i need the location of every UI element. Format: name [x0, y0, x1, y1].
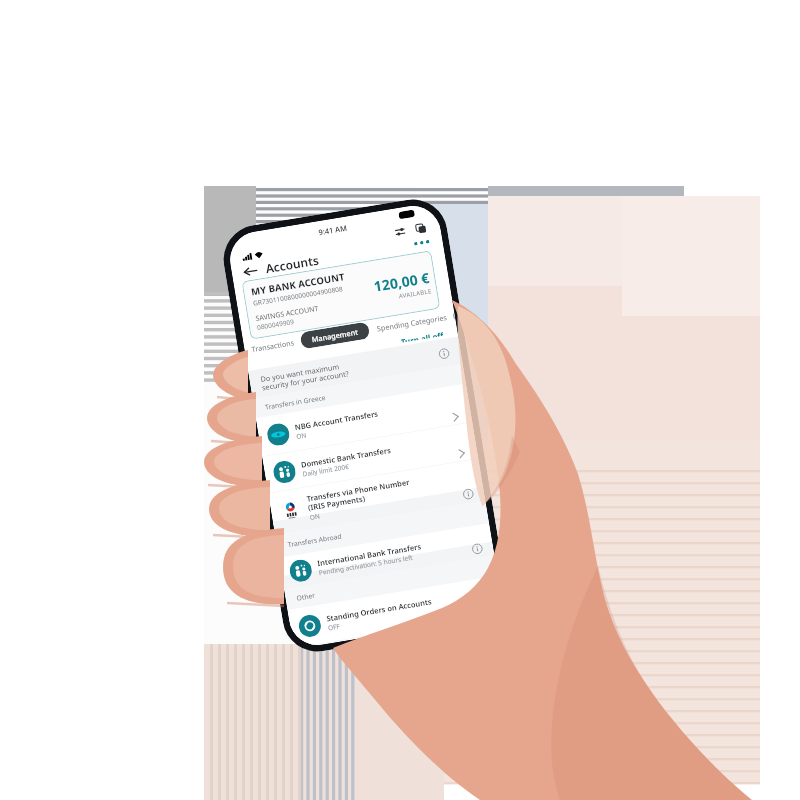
- staticText: ON: [296, 430, 307, 441]
- staticText: Spending Categories: [376, 312, 448, 333]
- staticText: 9:41 AM: [318, 223, 348, 237]
- staticText: NBG Account Transfers: [294, 408, 379, 432]
- button[interactable]: NBG Account Transfers: [256, 384, 472, 456]
- staticText: Other: [296, 563, 486, 603]
- staticText: Transactions: [251, 337, 295, 354]
- staticText: SAVINGS ACCOUNT: [255, 303, 319, 323]
- staticText: MY BANK ACCOUNT: [250, 270, 346, 298]
- staticText: Transfers in Greece: [264, 372, 454, 412]
- staticText: 0800049909: [256, 317, 295, 332]
- staticText: Domestic Bank Transfers: [300, 445, 392, 470]
- button[interactable]: MY BANK ACCOUNT: [241, 250, 440, 340]
- staticText: Transfers via Phone Number (IRIS Payment…: [306, 477, 412, 513]
- staticText: OFF: [327, 622, 340, 632]
- staticText: ON: [309, 511, 321, 522]
- button[interactable]: Do you want maximum security for your ac…: [248, 336, 463, 399]
- other: Information: [461, 487, 475, 501]
- button[interactable]: Transactions: [251, 337, 295, 354]
- other: Information: [470, 542, 484, 556]
- staticText: Ba: [452, 311, 456, 321]
- staticText: 120,00 €: [372, 268, 431, 296]
- button[interactable]: Transfers via Phone Number (IRIS Payment…: [268, 459, 485, 534]
- staticText: Daily limit 200€: [302, 462, 350, 478]
- staticText: Turn all off: [400, 330, 444, 343]
- button[interactable]: More options: [410, 233, 433, 253]
- button[interactable]: Ba: [452, 311, 456, 321]
- staticText: Standing Orders on Accounts: [326, 596, 432, 623]
- button[interactable]: My cards: [413, 221, 428, 235]
- staticText: Pending activation: 5 hours left: [318, 553, 413, 577]
- staticText: Do you want maximum security for your ac…: [260, 345, 439, 392]
- button[interactable]: Domestic Bank Transfers: [262, 422, 478, 493]
- button[interactable]: Spending Categories: [376, 312, 448, 333]
- other: Information: [437, 347, 451, 360]
- button[interactable]: Back: [241, 262, 260, 281]
- staticText: International Bank Transfers: [316, 541, 422, 568]
- staticText: AVAILABLE: [398, 287, 432, 300]
- staticText: Management: [311, 327, 359, 344]
- button[interactable]: International Bank Transfers: [279, 523, 494, 589]
- staticText: GR7301100800000004900808: [252, 284, 344, 308]
- button[interactable]: Transfers in Greece: [253, 364, 466, 418]
- button[interactable]: Transfers Abroad: [275, 500, 489, 558]
- button[interactable]: Other: [284, 555, 498, 610]
- button[interactable]: Filter: [392, 224, 407, 239]
- staticText: Transfers Abroad: [287, 509, 477, 549]
- button[interactable]: Turn all off: [397, 326, 447, 346]
- button[interactable]: Standing Orders on Accounts: [288, 576, 504, 648]
- button[interactable]: Management: [299, 321, 370, 349]
- staticText: Accounts: [264, 252, 320, 277]
